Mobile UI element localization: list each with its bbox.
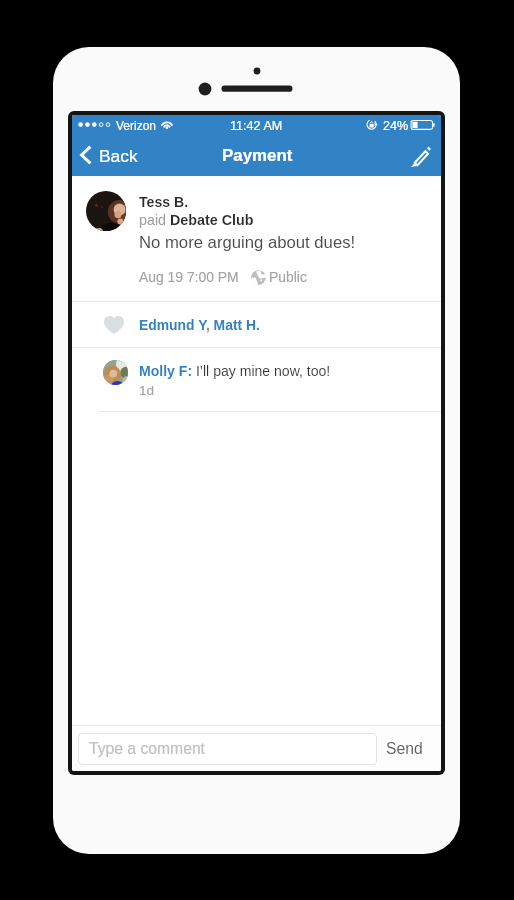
staticText: 11:42 AM bbox=[230, 119, 283, 133]
staticText: Public bbox=[269, 269, 307, 285]
staticText: Molly F: I’ll pay mine now, too! bbox=[139, 363, 331, 379]
button[interactable]: Send bbox=[381, 733, 428, 765]
button[interactable]: Type a comment bbox=[78, 733, 377, 765]
staticText: paid Debate Club bbox=[139, 212, 254, 228]
button[interactable]: Molly F: I’ll pay mine now, too! bbox=[72, 348, 441, 409]
button[interactable]: Back bbox=[72, 140, 146, 170]
staticText: Edmund Y, Matt H. bbox=[139, 317, 260, 333]
button[interactable]: Edmund Y, Matt H. bbox=[72, 302, 441, 347]
staticText: 24% bbox=[383, 119, 409, 133]
staticText: No more arguing about dues! bbox=[139, 233, 356, 252]
button[interactable]: Compose bbox=[401, 141, 441, 172]
staticText: Payment bbox=[222, 146, 293, 165]
staticText: 1d bbox=[139, 383, 155, 398]
staticText: Back bbox=[99, 146, 138, 165]
staticText: Verizon bbox=[116, 119, 157, 132]
staticText: Send bbox=[386, 740, 423, 758]
staticText: Aug 19 7:00 PM bbox=[139, 269, 239, 285]
staticText: Tess B. bbox=[139, 194, 189, 210]
staticText: Type a comment bbox=[89, 740, 205, 758]
